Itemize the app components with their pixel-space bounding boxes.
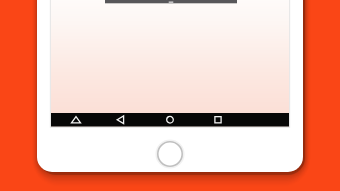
button[interactable]: Home	[156, 113, 184, 127]
button[interactable]: Home button	[158, 142, 182, 166]
button[interactable]: Menu	[62, 113, 90, 127]
button[interactable]: Back	[106, 113, 134, 127]
button[interactable]: Recent apps	[204, 113, 232, 127]
